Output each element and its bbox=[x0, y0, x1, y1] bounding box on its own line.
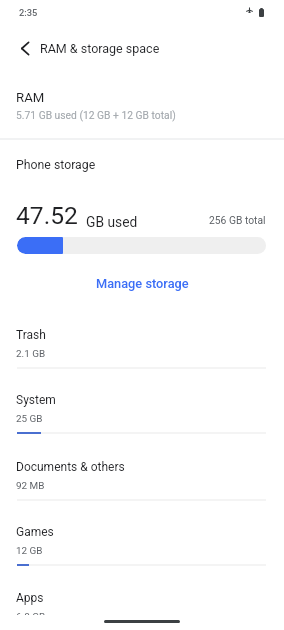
staticText: 2:35 bbox=[19, 7, 38, 18]
button[interactable]: Back bbox=[13, 36, 37, 60]
staticText: Apps bbox=[16, 591, 44, 605]
staticText: 25 GB bbox=[16, 413, 43, 425]
staticText: Documents & others bbox=[16, 460, 125, 474]
button[interactable]: Manage storage bbox=[82, 269, 203, 298]
staticText: RAM & storage space bbox=[40, 41, 160, 56]
button[interactable]: System bbox=[0, 384, 284, 450]
staticText: RAM bbox=[16, 90, 45, 105]
staticText: Games bbox=[16, 525, 54, 539]
staticText: 6.8 GB bbox=[16, 611, 46, 623]
staticText: Manage storage bbox=[96, 276, 189, 291]
staticText: 12 GB bbox=[16, 545, 43, 557]
button[interactable]: Apps bbox=[0, 582, 284, 630]
staticText: System bbox=[16, 393, 56, 407]
staticText: 92 MB bbox=[16, 480, 45, 492]
button[interactable]: Documents & others bbox=[0, 451, 284, 517]
button[interactable]: Games bbox=[0, 516, 284, 582]
staticText: 5.71 GB used (12 GB + 12 GB total) bbox=[16, 109, 176, 121]
staticText: 47.52 bbox=[16, 201, 78, 230]
button[interactable]: RAM bbox=[0, 80, 284, 138]
staticText: 256 GB total bbox=[209, 214, 266, 226]
staticText: GB used bbox=[86, 214, 138, 230]
button[interactable]: Trash bbox=[0, 319, 284, 385]
staticText: Trash bbox=[16, 328, 46, 342]
staticText: Phone storage bbox=[16, 158, 96, 172]
staticText: 2.1 GB bbox=[16, 348, 46, 360]
